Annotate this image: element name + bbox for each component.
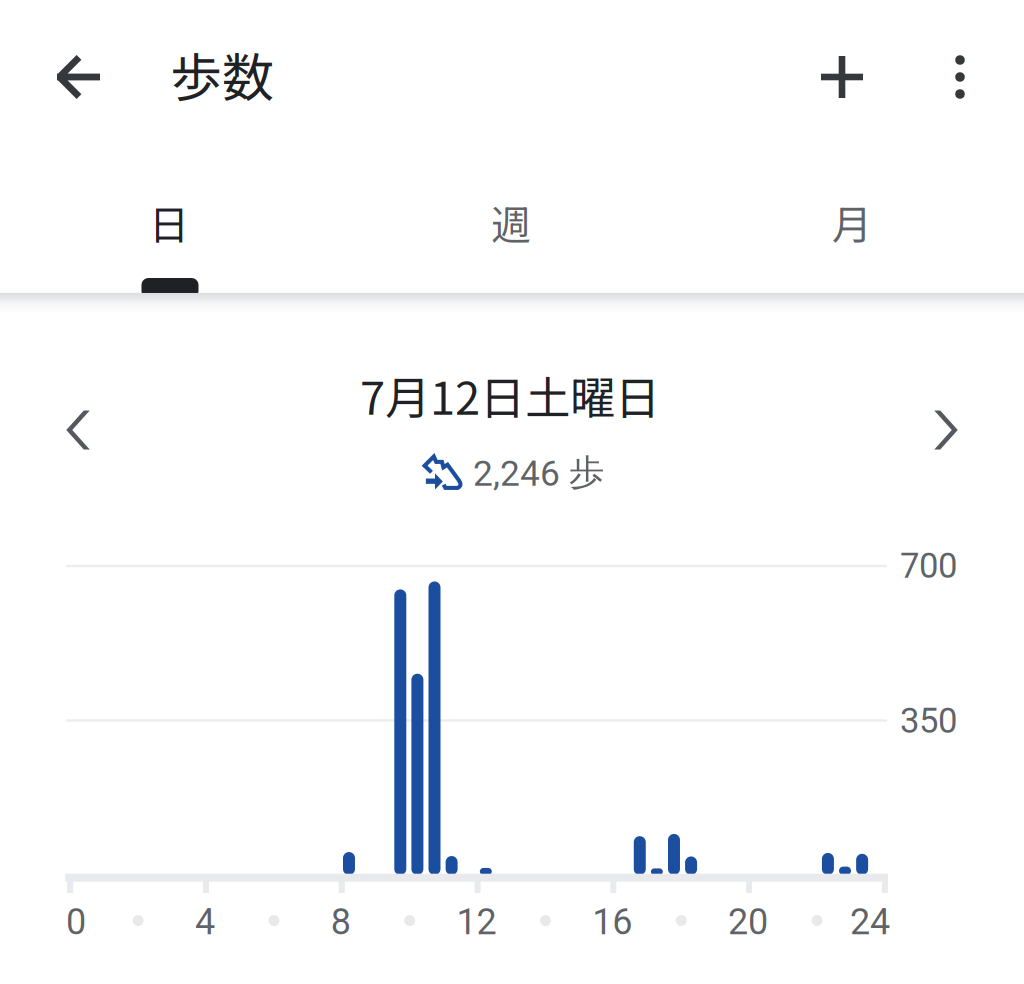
staticText: 月 [832, 193, 872, 251]
button[interactable]: 日 [0, 158, 339, 286]
button[interactable]: Next day [901, 385, 991, 475]
staticText: 12 [456, 901, 496, 943]
staticText: 日 [149, 193, 189, 251]
staticText: 週 [491, 193, 531, 251]
button[interactable]: 週 [340, 158, 681, 286]
staticText: 0 [66, 901, 86, 943]
staticText: 4 [195, 901, 215, 943]
button[interactable]: 月 [681, 158, 1022, 286]
staticText: 20 [728, 901, 768, 943]
staticText: 歩数 [170, 36, 274, 112]
staticText: 8 [331, 901, 351, 943]
staticText: 7月12日土曜日 [360, 362, 660, 428]
staticText: 16 [592, 901, 632, 943]
staticText: 700 [900, 546, 957, 586]
button[interactable]: Back [30, 29, 126, 125]
button[interactable]: Previous day [33, 385, 123, 475]
button[interactable]: 歩数 [170, 39, 490, 109]
staticText: 350 [900, 701, 957, 741]
staticText: 2,246 歩 [473, 450, 604, 495]
staticText: 24 [850, 901, 890, 943]
button[interactable]: Add [794, 29, 890, 125]
button[interactable]: More options [912, 29, 1008, 125]
